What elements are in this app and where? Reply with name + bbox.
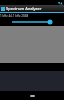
staticText: ▼▲ (58, 1, 63, 4)
staticText: 1 kHz 44.1 kHz 2048 (0, 14, 29, 18)
staticText: Spectrum Analyzer (6, 6, 42, 11)
